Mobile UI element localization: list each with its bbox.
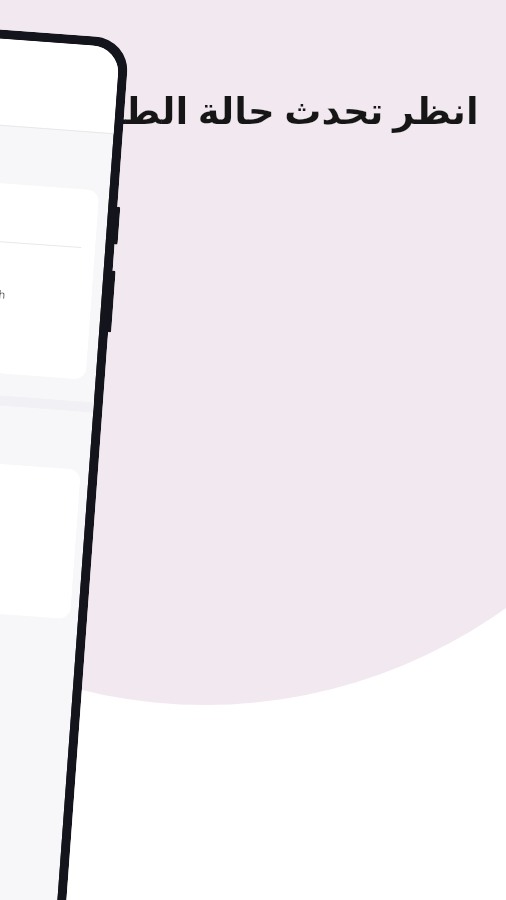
button[interactable]: Dark chocolate: [0, 456, 81, 619]
button[interactable]: Chocolate with: [0, 177, 99, 380]
staticText: انظر تحدث حالة الطلب: [56, 84, 494, 134]
staticText: Chocolate with: [0, 281, 6, 302]
